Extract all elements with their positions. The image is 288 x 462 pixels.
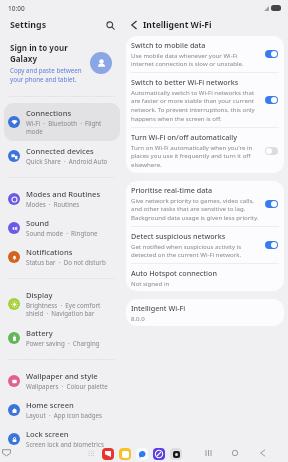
staticText: Brightness · Eye comfort shield · Naviga… [26, 301, 101, 318]
button[interactable]: Toggle [265, 96, 278, 104]
button[interactable]: Camera [102, 448, 114, 460]
button[interactable]: Intelligent Wi-Fi [126, 299, 284, 326]
staticText: Wi-Fi · Bluetooth · Flight mode [26, 119, 102, 136]
staticText: Layout · App icon badges [26, 411, 103, 419]
button[interactable]: Battery [4, 323, 120, 352]
staticText: Modes · Routines [26, 200, 80, 208]
button[interactable]: Modes and Routines [4, 184, 120, 213]
staticText: Sound mode · Ringtone [26, 229, 98, 237]
button[interactable]: Hide taskbar [2, 449, 11, 456]
button[interactable]: Recent app [170, 448, 182, 460]
staticText: Wallpaper and style [26, 371, 98, 381]
staticText: 8.0.0 [131, 314, 145, 322]
button[interactable]: Display [4, 285, 120, 323]
staticText: Battery [26, 328, 53, 338]
staticText: Screen lock and biometrics [26, 440, 104, 448]
button[interactable]: Toggle [265, 241, 278, 249]
button[interactable]: Home screen [4, 395, 120, 424]
button[interactable]: Recents [202, 447, 214, 459]
button[interactable]: Toggle [265, 147, 278, 155]
staticText: Connections [26, 108, 72, 118]
button[interactable]: All apps [88, 450, 95, 457]
button[interactable]: Prioritise real-time data [126, 181, 284, 226]
button[interactable]: Connected devices [4, 141, 120, 170]
staticText: Notifications [26, 247, 73, 257]
staticText: Home screen [26, 400, 74, 410]
staticText: Display [26, 290, 53, 300]
staticText: Not signed in [131, 279, 170, 287]
button[interactable]: Wallpaper and style [4, 366, 120, 395]
staticText: Sound [26, 218, 50, 228]
button[interactable]: Auto Hotspot connection [126, 264, 284, 291]
staticText: Detect suspicious networks [131, 231, 226, 241]
button[interactable]: Sign in to your Galaxy [10, 42, 112, 84]
button[interactable]: Notifications [4, 242, 120, 271]
button[interactable]: Home [229, 447, 241, 459]
button[interactable]: Internet [153, 448, 165, 460]
button[interactable]: Switch to better Wi-Fi networks [126, 73, 284, 127]
staticText: 10:00 [8, 4, 25, 13]
staticText: Turn on Wi-Fi automatically when you're … [131, 143, 253, 169]
button[interactable]: Connections [4, 103, 120, 141]
button[interactable]: Toggle [265, 200, 278, 208]
button[interactable]: Messages [136, 448, 148, 460]
staticText: Connected devices [26, 146, 94, 156]
staticText: Turn Wi-Fi on/off automatically [131, 132, 237, 142]
staticText: Use mobile data whenever your Wi-Fi inte… [131, 51, 244, 68]
staticText: Copy and paste between your phone and ta… [10, 66, 82, 84]
staticText: Intelligent Wi-Fi [143, 19, 212, 31]
button[interactable]: Back [127, 18, 141, 32]
staticText: Prioritise real-time data [131, 185, 213, 195]
staticText: Auto Hotspot connection [131, 268, 217, 278]
button[interactable]: Sound [4, 213, 120, 242]
staticText: Lock screen [26, 429, 69, 439]
staticText: Quick Share · Android Auto [26, 157, 108, 165]
staticText: Status bar · Do not disturb [26, 258, 106, 266]
staticText: Power saving · Charging [26, 339, 100, 347]
staticText: Sign in to your Galaxy [10, 42, 68, 64]
button[interactable]: Toggle [265, 50, 278, 58]
staticText: Switch to mobile data [131, 40, 206, 50]
staticText: Modes and Routines [26, 189, 101, 199]
button[interactable]: My Files [119, 448, 131, 460]
staticText: Wallpapers · Colour palette [26, 382, 108, 390]
staticText: Intelligent Wi-Fi [131, 303, 186, 313]
staticText: Settings [10, 19, 47, 31]
button[interactable]: Back [256, 447, 268, 459]
staticText: Automatically switch to Wi-Fi networks t… [131, 88, 255, 123]
staticText: Get notified when suspicious activity is… [131, 242, 242, 259]
staticText: Switch to better Wi-Fi networks [131, 77, 239, 87]
button[interactable]: Detect suspicious networks [126, 227, 284, 263]
button[interactable]: Lock screen [4, 424, 120, 453]
button[interactable]: Switch to mobile data [126, 36, 284, 72]
button[interactable]: Turn Wi-Fi on/off automatically [126, 128, 284, 173]
button[interactable]: Search [104, 19, 117, 32]
staticText: Give network priority to games, video ca… [131, 196, 259, 222]
